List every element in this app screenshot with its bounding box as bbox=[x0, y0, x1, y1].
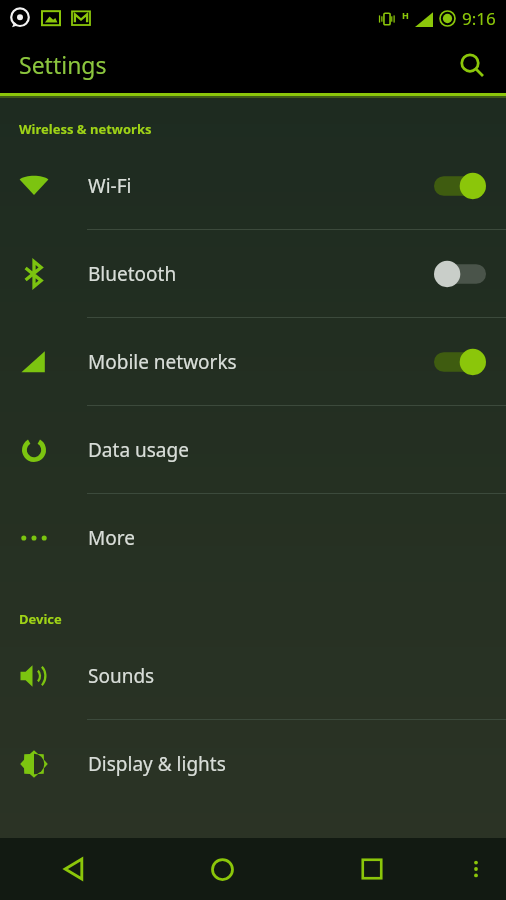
button[interactable]: Sounds bbox=[0, 632, 506, 720]
button[interactable]: Wi-Fi bbox=[0, 142, 506, 230]
staticText: Settings bbox=[19, 49, 107, 80]
staticText: More bbox=[88, 525, 506, 551]
button[interactable]: Mobile networks bbox=[0, 318, 506, 406]
button[interactable]: More bbox=[0, 494, 506, 582]
staticText: Display & lights bbox=[88, 751, 506, 777]
staticText: Bluetooth bbox=[88, 261, 434, 287]
button[interactable]: Search bbox=[446, 39, 498, 91]
button[interactable]: Back bbox=[0, 838, 148, 900]
staticText: Wi-Fi bbox=[88, 173, 434, 199]
staticText: Wireless & networks bbox=[19, 120, 152, 138]
staticText: 9:16 bbox=[462, 7, 496, 30]
button[interactable]: Bluetooth bbox=[0, 230, 506, 318]
button[interactable]: Home bbox=[148, 838, 297, 900]
staticText: Mobile networks bbox=[88, 349, 434, 375]
staticText: Sounds bbox=[88, 663, 506, 689]
staticText: Device bbox=[19, 610, 62, 628]
staticText: H bbox=[402, 9, 409, 21]
staticText: Data usage bbox=[88, 437, 506, 463]
button[interactable]: Data usage bbox=[0, 406, 506, 494]
button[interactable]: Recent apps bbox=[297, 838, 446, 900]
button[interactable]: Display & lights bbox=[0, 720, 506, 808]
button[interactable]: More options bbox=[446, 838, 506, 900]
